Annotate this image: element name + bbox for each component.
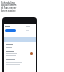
staticText: Scheduling appointments has never been e… — [1, 1, 17, 13]
button[interactable] — [5, 29, 16, 32]
